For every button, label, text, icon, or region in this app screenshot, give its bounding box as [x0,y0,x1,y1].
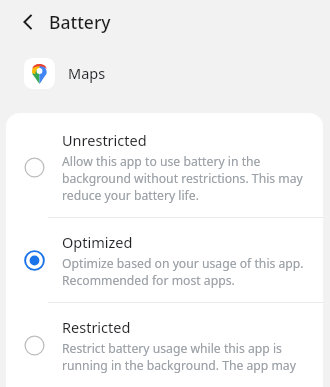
staticText: Restrict battery usage while this app is [62,340,282,357]
staticText: Optimized [62,232,133,252]
staticText: background without restrictions. This ma… [62,170,303,187]
staticText: Unrestricted [62,130,147,150]
staticText: Optimize based on your usage of this app… [62,255,304,272]
staticText: Maps [68,63,106,83]
button[interactable]: Optimized [6,218,323,302]
staticText: reduce your battery life. [62,187,199,204]
staticText: Allow this app to use battery in the [62,153,261,170]
staticText: Restricted [62,317,131,337]
button[interactable]: Maps [0,44,330,102]
staticText: Battery [49,10,111,34]
button[interactable]: Restricted [6,303,323,387]
staticText: Recommended for most apps. [62,272,235,289]
button[interactable]: Back [14,8,42,36]
button[interactable]: Unrestricted [6,113,323,217]
staticText: running in the background. The app may [62,357,296,373]
